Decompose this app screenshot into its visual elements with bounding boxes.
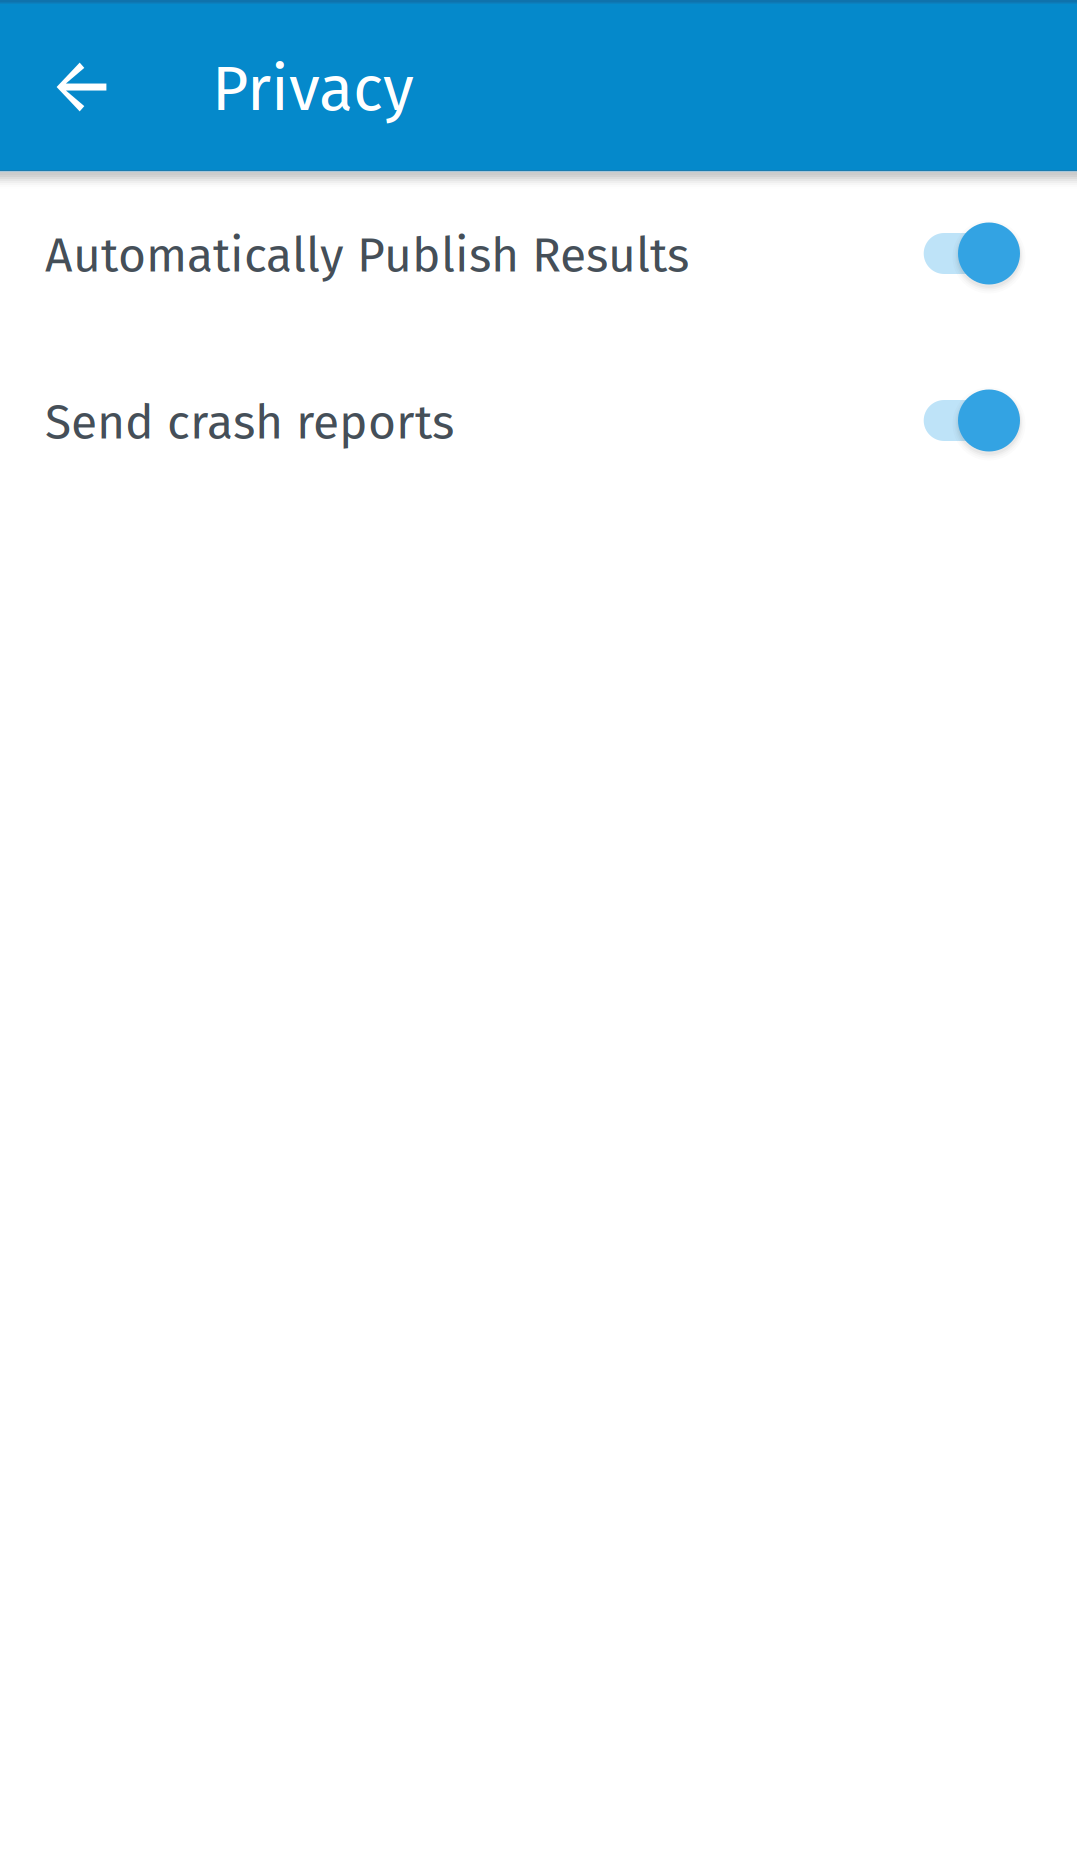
staticText: Automatically Publish Results [45,227,689,284]
button[interactable]: Send crash reports [0,337,1077,504]
staticText: Privacy [212,51,414,127]
button[interactable]: Back [0,0,126,168]
button[interactable]: Automatically Publish Results [0,170,1077,337]
staticText: Send crash reports [45,394,454,451]
